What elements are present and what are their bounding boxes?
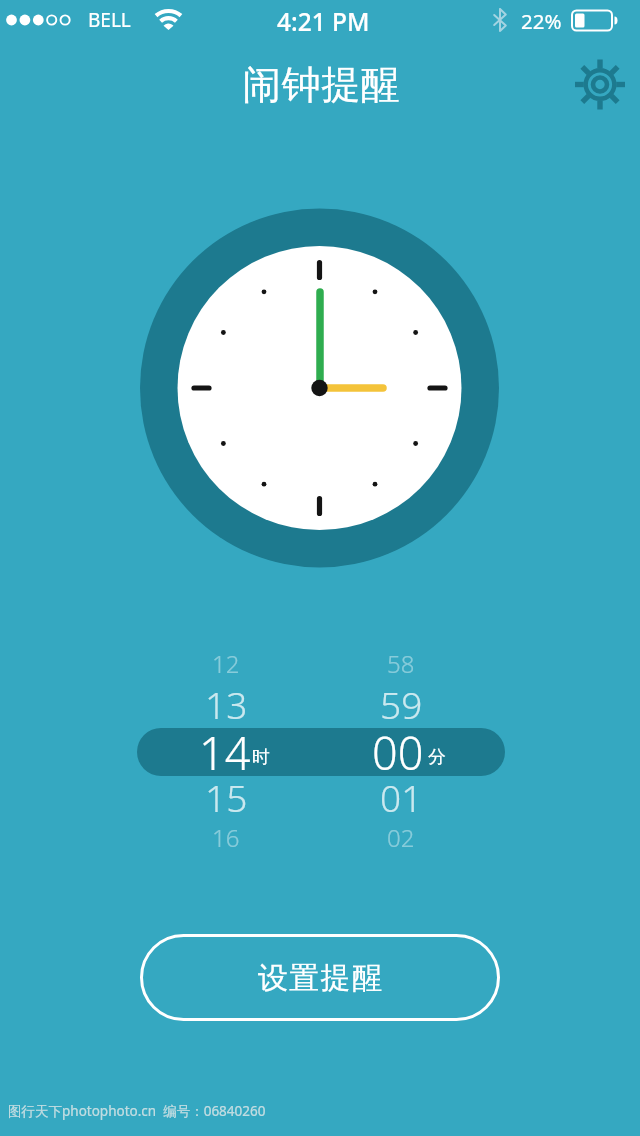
staticText: 15 <box>205 772 248 816</box>
staticText: 时 <box>252 746 270 769</box>
button[interactable] <box>137 728 505 776</box>
staticText: 16 <box>212 821 240 851</box>
staticText: 设置提醒 <box>257 959 383 997</box>
staticText: 22% <box>521 7 562 33</box>
staticText: 12 <box>212 647 240 677</box>
staticText: 58 <box>387 647 415 677</box>
staticText: 01 <box>380 772 423 816</box>
staticText: 02 <box>387 821 415 851</box>
staticText: BELL <box>88 7 131 33</box>
staticText: 闹钟提醒 <box>242 60 400 109</box>
staticText: 图行天下photophoto.cn 编号：06840260 <box>8 1102 266 1120</box>
button[interactable]: 设置提醒 <box>140 934 500 1021</box>
staticText: 00 <box>372 722 424 774</box>
staticText: 59 <box>380 679 423 723</box>
staticText: 分 <box>428 746 446 769</box>
staticText: 14 <box>199 722 251 774</box>
staticText: 13 <box>205 679 248 723</box>
staticText: 4:21 PM <box>277 5 370 35</box>
